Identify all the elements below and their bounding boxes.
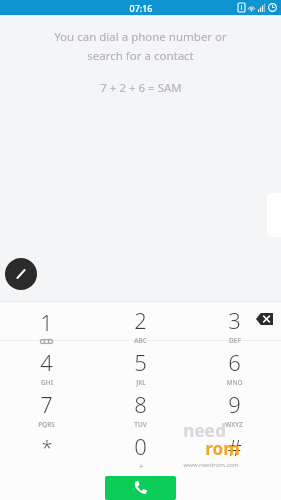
staticText: 0	[134, 431, 147, 461]
staticText: 3	[228, 305, 241, 335]
staticText: TUV	[134, 420, 147, 429]
staticText: nee	[183, 419, 215, 442]
staticText: www.needrom.com	[183, 461, 239, 469]
staticText: search for a contact	[87, 48, 194, 64]
staticText: 9	[228, 389, 241, 419]
staticText: 2	[134, 305, 147, 335]
staticText: DEF	[229, 336, 241, 345]
staticText: 4	[40, 347, 53, 377]
staticText: You can dial a phone number or	[54, 29, 227, 45]
staticText: JKL	[136, 378, 146, 387]
button[interactable]: 4	[0, 346, 93, 388]
staticText: MNO	[226, 378, 243, 387]
button[interactable]: 0	[93, 430, 187, 472]
button[interactable]: 1	[0, 304, 93, 346]
button[interactable]: 6	[187, 346, 281, 388]
staticText: 5	[134, 347, 147, 377]
button[interactable]: Call	[105, 476, 176, 500]
button[interactable]: Backspace	[256, 313, 273, 325]
button[interactable]: 8	[93, 388, 187, 430]
staticText: 6	[228, 347, 241, 377]
staticText: *	[41, 434, 53, 461]
button[interactable]: 2	[93, 304, 187, 346]
button[interactable]: 7	[0, 388, 93, 430]
staticText: GHI	[41, 378, 53, 387]
button[interactable]: #	[187, 430, 281, 472]
staticText: 8	[134, 389, 147, 419]
staticText: +	[139, 462, 143, 471]
staticText: rom	[205, 437, 240, 460]
staticText: PQRS	[38, 420, 55, 429]
staticText: ABC	[134, 336, 147, 345]
staticText: 7	[40, 389, 53, 419]
staticText: WXYZ	[225, 420, 243, 429]
button[interactable]: 9	[187, 388, 281, 430]
button[interactable]: 5	[93, 346, 187, 388]
staticText: 7 + 2 + 6 = SAM	[100, 80, 182, 96]
staticText: 1	[40, 307, 53, 337]
button[interactable]: 3	[187, 304, 281, 346]
staticText: 07:16	[129, 2, 153, 14]
staticText: #	[227, 432, 242, 462]
button[interactable]: Edit number	[5, 258, 37, 290]
button[interactable]: *	[0, 430, 93, 472]
staticText: d	[215, 419, 226, 442]
